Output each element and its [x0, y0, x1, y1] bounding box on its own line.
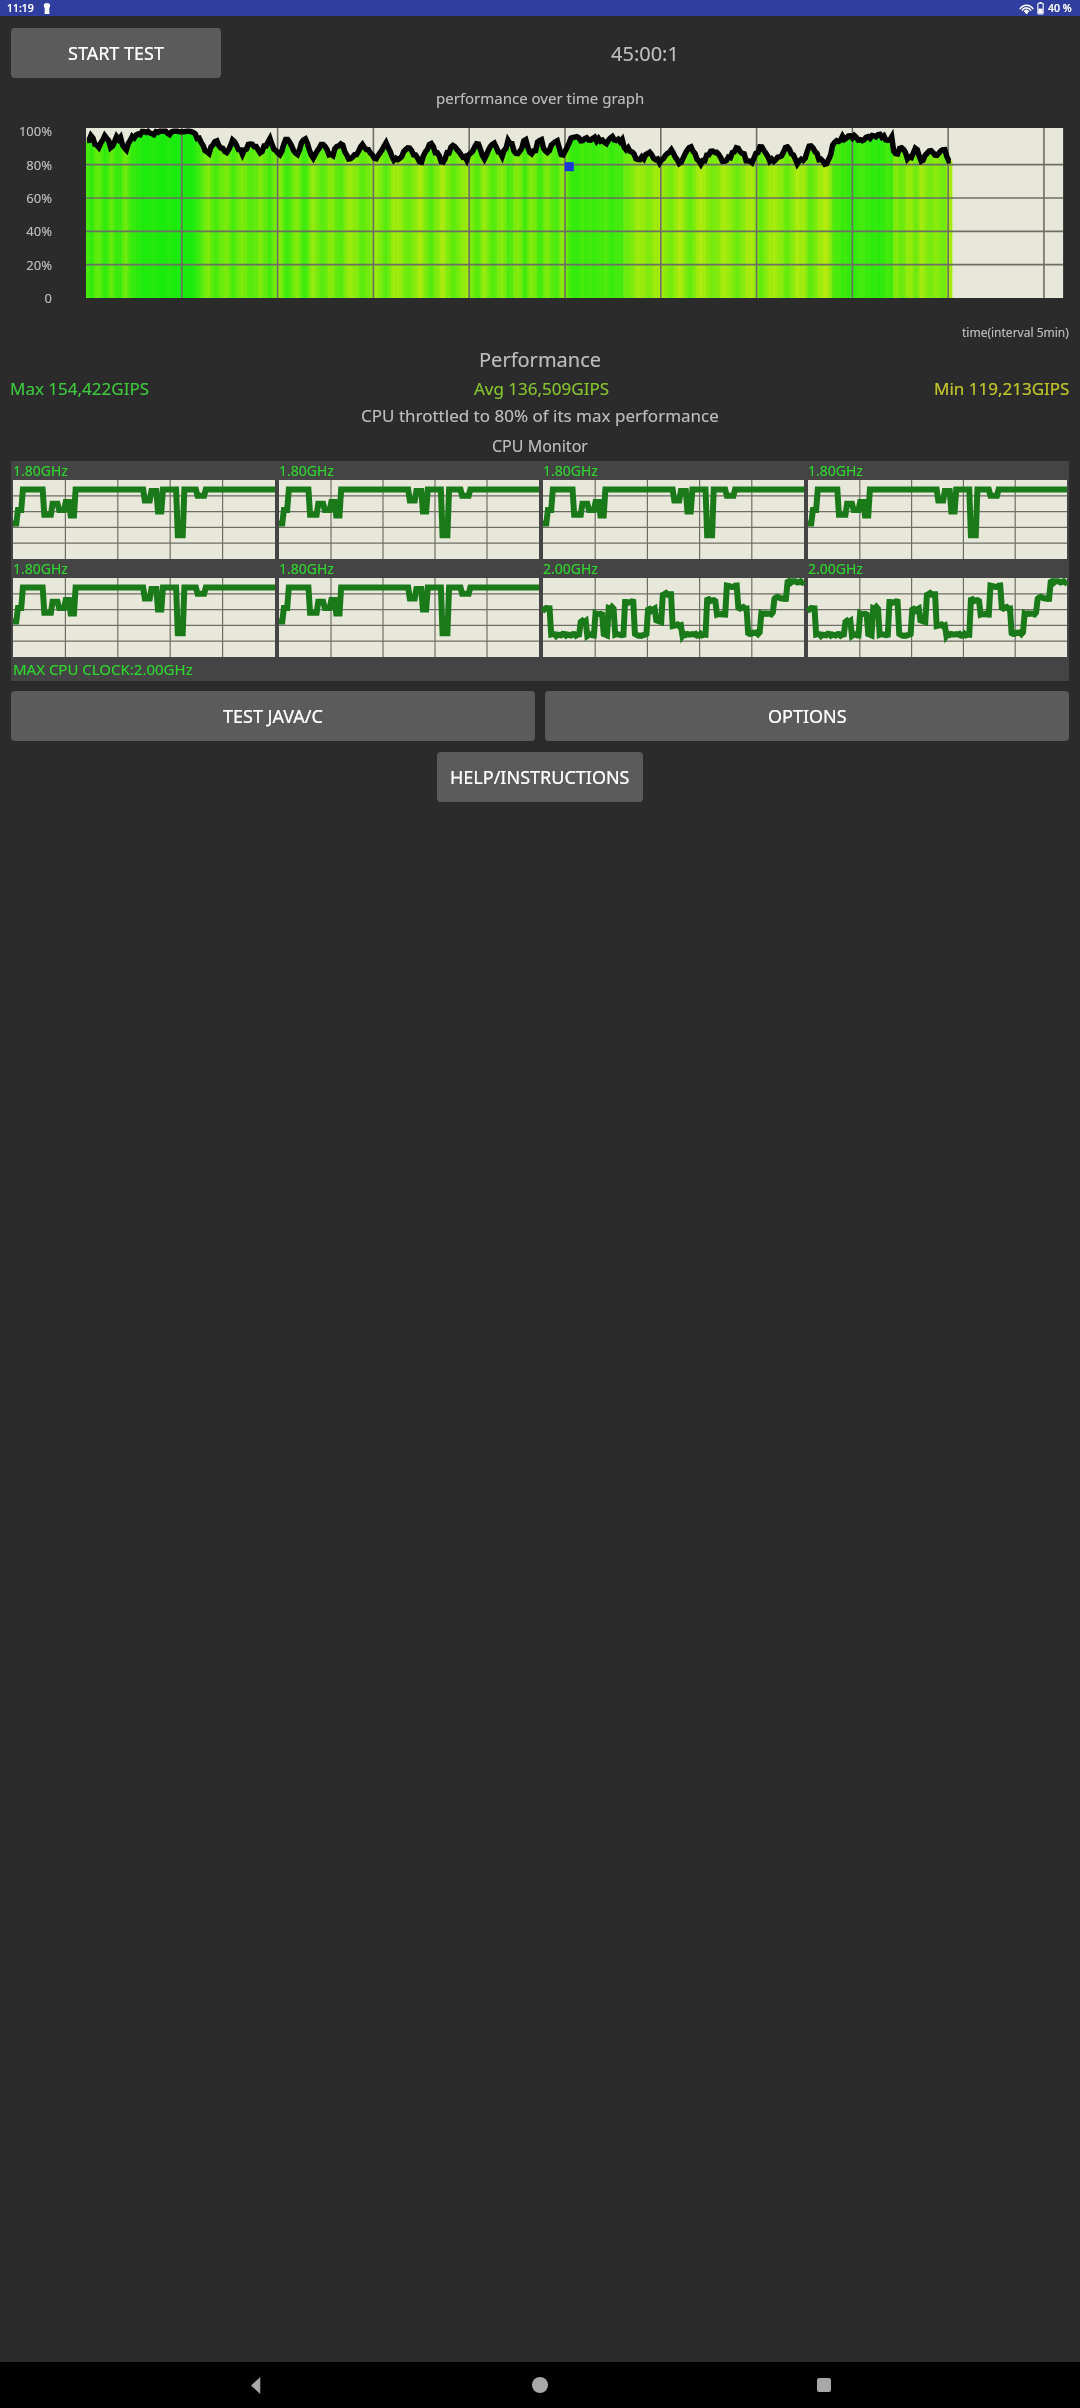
staticText: 20%	[0, 256, 52, 274]
staticText: 1.80GHz	[543, 461, 598, 480]
staticText: 2.00GHz	[543, 559, 598, 578]
staticText: Max 154,422GIPS	[10, 377, 150, 400]
staticText: 60%	[0, 189, 52, 207]
button[interactable]: Back	[228, 2362, 284, 2408]
button[interactable]: START TEST	[11, 28, 221, 78]
button[interactable]: Home	[512, 2362, 568, 2408]
staticText: 0	[0, 289, 52, 307]
staticText: Min 119,213GIPS	[934, 377, 1070, 400]
staticText: 100%	[0, 122, 52, 140]
staticText: TEST JAVA/C	[223, 704, 323, 729]
staticText: time(interval 5min)	[962, 324, 1069, 340]
staticText: START TEST	[68, 41, 164, 66]
staticText: 40 %	[1048, 1, 1072, 15]
staticText: 1.80GHz	[13, 461, 68, 480]
staticText: performance over time graph	[436, 88, 645, 108]
staticText: Avg 136,509GIPS	[474, 377, 610, 400]
staticText: 11:19	[7, 1, 34, 15]
staticText: CPU Monitor	[492, 435, 588, 457]
staticText: 2.00GHz	[808, 559, 863, 578]
staticText: 1.80GHz	[13, 559, 68, 578]
staticText: HELP/INSTRUCTIONS	[450, 765, 630, 790]
button[interactable]: HELP/INSTRUCTIONS	[437, 752, 643, 802]
staticText: OPTIONS	[768, 704, 847, 729]
staticText: 1.80GHz	[808, 461, 863, 480]
button[interactable]: Recent apps	[796, 2362, 852, 2408]
button[interactable]: TEST JAVA/C	[11, 691, 535, 741]
staticText: CPU throttled to 80% of its max performa…	[361, 404, 719, 427]
staticText: 40%	[0, 222, 52, 240]
staticText: 80%	[0, 156, 52, 174]
staticText: 45:00:1	[611, 40, 679, 67]
staticText: 1.80GHz	[279, 559, 334, 578]
staticText: Performance	[479, 346, 602, 373]
staticText: MAX CPU CLOCK:2.00GHz	[13, 659, 193, 679]
staticText: 1.80GHz	[279, 461, 334, 480]
button[interactable]: OPTIONS	[545, 691, 1069, 741]
